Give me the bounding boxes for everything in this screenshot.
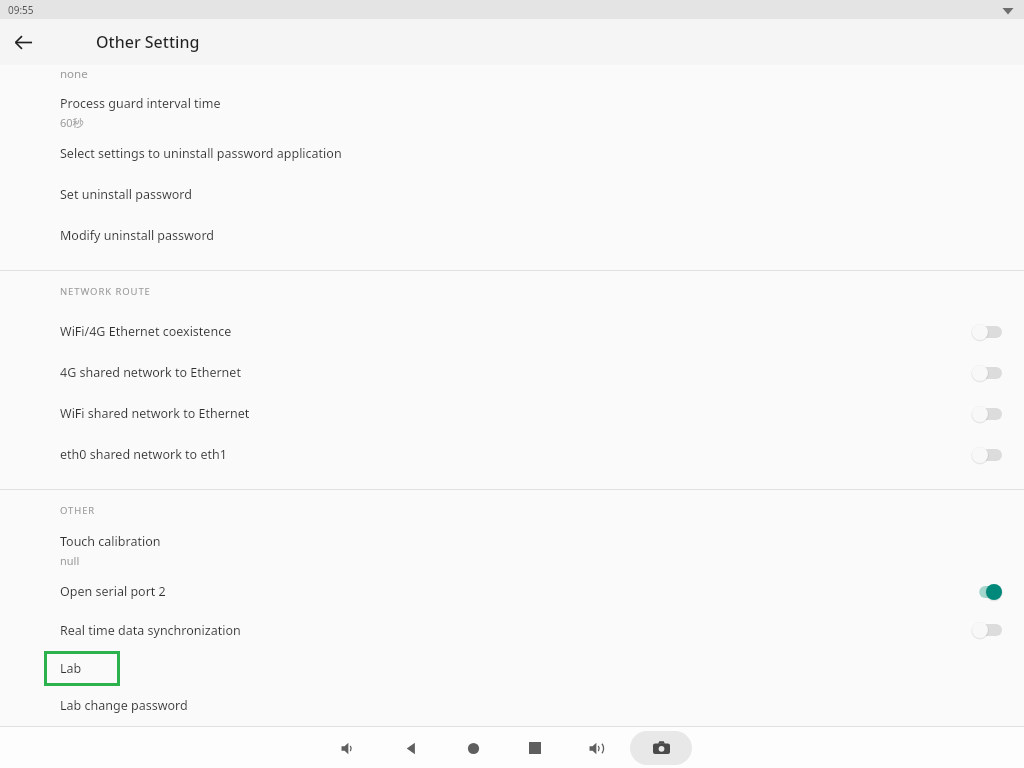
button[interactable]: Back xyxy=(394,731,428,765)
staticText: Open serial port 2 xyxy=(60,583,166,600)
staticText: null xyxy=(60,553,80,568)
button[interactable]: Touch calibration xyxy=(0,530,1024,571)
staticText: Set uninstall password xyxy=(60,186,192,203)
staticText: Lab xyxy=(60,660,82,677)
staticText: WiFi/4G Ethernet coexistence xyxy=(60,323,232,340)
staticText: Process guard interval time xyxy=(60,95,221,112)
staticText: 60秒 xyxy=(60,115,84,130)
button[interactable]: Open serial port 2 xyxy=(0,571,1024,612)
button[interactable]: none xyxy=(0,65,1024,92)
button[interactable]: Lab xyxy=(0,648,1024,689)
staticText: NETWORK ROUTE xyxy=(60,285,151,298)
staticText: 09:55 xyxy=(8,3,34,17)
staticText: eth0 shared network to eth1 xyxy=(60,446,227,463)
button[interactable]: Process guard interval time xyxy=(0,92,1024,133)
button[interactable]: WiFi/4G Ethernet coexistence xyxy=(0,311,1024,352)
button[interactable]: Recents xyxy=(518,731,552,765)
staticText: none xyxy=(60,66,88,82)
staticText: Other Setting xyxy=(96,31,200,53)
staticText: Real time data synchronization xyxy=(60,622,241,639)
button[interactable]: Select settings to uninstall password ap… xyxy=(0,133,1024,174)
staticText: WiFi shared network to Ethernet xyxy=(60,405,250,422)
button[interactable]: Volume down xyxy=(332,731,366,765)
staticText: Touch calibration xyxy=(60,533,161,550)
staticText: Select settings to uninstall password ap… xyxy=(60,145,342,162)
button[interactable]: Lab change password xyxy=(0,689,1024,722)
button[interactable]: WiFi shared network to Ethernet xyxy=(0,393,1024,434)
button[interactable]: Set uninstall password xyxy=(0,174,1024,215)
staticText: Modify uninstall password xyxy=(60,227,215,244)
staticText: OTHER xyxy=(60,504,96,517)
button[interactable]: Back xyxy=(6,25,40,59)
button[interactable]: Volume up xyxy=(580,731,614,765)
button[interactable]: Real time data synchronization xyxy=(0,612,1024,648)
button[interactable]: Home xyxy=(456,731,490,765)
staticText: Lab change password xyxy=(60,697,188,714)
button[interactable]: 4G shared network to Ethernet xyxy=(0,352,1024,393)
button[interactable]: eth0 shared network to eth1 xyxy=(0,434,1024,489)
button[interactable]: Modify uninstall password xyxy=(0,215,1024,270)
button[interactable]: Screenshot xyxy=(630,731,692,765)
staticText: 4G shared network to Ethernet xyxy=(60,364,241,381)
